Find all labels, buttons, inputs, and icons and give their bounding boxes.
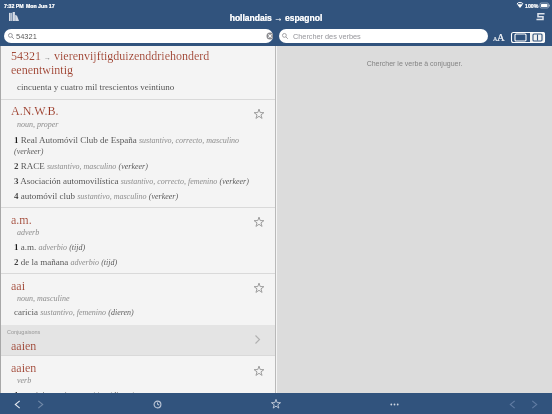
button[interactable]: Favourites: [266, 394, 286, 414]
staticText: caricia sustantivo, femenino (dieren): [14, 307, 134, 317]
staticText: eenentwintig: [11, 63, 73, 76]
staticText: aaien: [11, 339, 37, 352]
staticText: 1 Real Automóvil Club de España sustanti…: [14, 135, 240, 145]
button[interactable]: Chercher des verbes: [279, 29, 488, 43]
button[interactable]: Add to favourites: [253, 282, 265, 294]
staticText: adverb: [17, 228, 40, 237]
button[interactable]: [1, 99, 275, 207]
staticText: aai: [11, 279, 25, 292]
button[interactable]: Swap languages: [534, 11, 547, 22]
staticText: A: [493, 36, 498, 43]
staticText: 2 RACE sustantivo, masculino (verkeer): [14, 161, 148, 171]
button[interactable]: More: [384, 394, 404, 414]
staticText: Chercher des verbes: [293, 32, 361, 40]
staticText: A.N.W.B.: [11, 104, 59, 117]
staticText: 7:32 PM: [4, 3, 24, 9]
button[interactable]: Split pane: [530, 32, 545, 43]
button[interactable]: 54321: [4, 29, 273, 43]
staticText: 1 acariciar verbo, transitivo (dieren): [14, 390, 135, 400]
staticText: noun, proper: [17, 120, 59, 129]
button[interactable]: Single pane: [511, 32, 530, 43]
staticText: Conjugaisons: [7, 329, 41, 335]
button[interactable]: Add to favourites: [253, 365, 265, 377]
staticText: verb: [17, 376, 32, 385]
staticText: 54321: [16, 32, 37, 40]
button[interactable]: [1, 325, 275, 355]
staticText: (verkeer): [14, 147, 44, 156]
staticText: cincuenta y cuatro mil trescientos veint…: [17, 82, 175, 92]
staticText: aaien: [11, 361, 37, 374]
staticText: 3 Asociación automovilística sustantivo,…: [14, 176, 249, 186]
button[interactable]: Forward: [30, 394, 50, 414]
button[interactable]: Add to favourites: [253, 108, 265, 120]
button[interactable]: Back: [7, 394, 27, 414]
button[interactable]: Clear text: [266, 32, 273, 40]
staticText: a.m.: [11, 213, 32, 226]
button[interactable]: Dictionaries: [7, 11, 21, 22]
button[interactable]: [1, 355, 275, 393]
staticText: 54321 → vierenvijftigduizenddriehonderd: [11, 49, 210, 62]
staticText: 100%: [525, 3, 539, 9]
button[interactable]: [1, 207, 275, 273]
staticText: noun, masculine: [17, 294, 70, 303]
button[interactable]: [1, 46, 275, 99]
staticText: Mon Jun 17: [26, 3, 55, 9]
button[interactable]: [1, 273, 275, 325]
staticText: 2 de la mañana adverbio (tijd): [14, 257, 118, 267]
button[interactable]: Next page: [524, 394, 544, 414]
staticText: A: [497, 32, 505, 44]
button[interactable]: Add to favourites: [253, 216, 265, 228]
staticText: Chercher le verbe à conjuguer.: [277, 60, 552, 68]
staticText: 1 a.m. adverbio (tijd): [14, 242, 86, 252]
staticText: hollandais → espagnol: [0, 13, 552, 22]
button[interactable]: Previous page: [502, 394, 522, 414]
button[interactable]: History: [147, 394, 167, 414]
staticText: 4 automóvil club sustantivo, masculino (…: [14, 191, 179, 201]
button[interactable]: Text size: [491, 28, 508, 43]
